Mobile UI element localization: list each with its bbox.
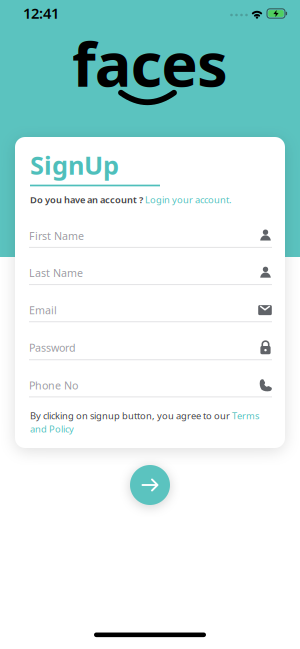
staticText: Email bbox=[29, 303, 57, 317]
staticText: Password bbox=[29, 341, 76, 355]
staticText: Terms bbox=[232, 409, 259, 422]
staticText: faces bbox=[72, 22, 228, 104]
button[interactable]: Sign up bbox=[130, 465, 170, 505]
staticText: Phone No bbox=[29, 378, 78, 392]
staticText: First Name bbox=[29, 229, 84, 243]
button[interactable]: Login your account. bbox=[145, 193, 232, 206]
button[interactable]: Terms bbox=[232, 409, 259, 422]
staticText: 12:41 bbox=[23, 3, 59, 23]
staticText: Login your account. bbox=[145, 193, 232, 206]
staticText: Last Name bbox=[29, 266, 83, 280]
staticText: Do you have an account ? bbox=[30, 193, 145, 206]
staticText: By clicking on signup button, you agree … bbox=[30, 409, 232, 422]
button[interactable]: and Policy bbox=[30, 423, 74, 435]
staticText: and Policy bbox=[30, 423, 74, 435]
staticText: SignUp bbox=[30, 148, 119, 182]
